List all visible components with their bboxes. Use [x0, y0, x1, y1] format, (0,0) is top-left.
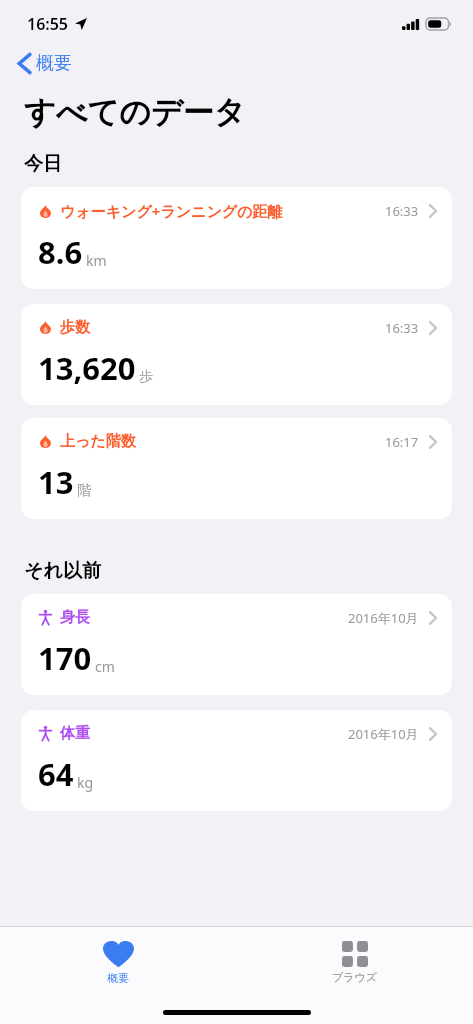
other: ブラウズ [342, 941, 368, 967]
staticText: 上った階数 [60, 432, 136, 451]
staticText: 170 [38, 637, 92, 679]
staticText: 16:33 [385, 319, 419, 337]
button[interactable]: 概要 [0, 939, 236, 987]
staticText: 16:55 [27, 13, 69, 35]
staticText: 歩 [139, 368, 153, 386]
staticText: 16:33 [385, 202, 419, 220]
staticText: 概要 [36, 52, 72, 75]
staticText: 13,620 [38, 347, 136, 389]
staticText: 64 [38, 753, 74, 795]
staticText: 2016年10月 [348, 609, 419, 627]
staticText: 概要 [107, 971, 129, 985]
staticText: ブラウズ [332, 970, 378, 984]
staticText: 13 [38, 461, 74, 503]
staticText: 歩数 [60, 318, 90, 337]
staticText: それ以前 [24, 559, 101, 583]
staticText: cm [95, 657, 115, 676]
staticText: ウォーキング+ランニングの距離 [60, 201, 283, 221]
staticText: 今日 [24, 152, 62, 176]
staticText: 2016年10月 [348, 725, 419, 743]
staticText: kg [77, 773, 94, 792]
other: 概要 [103, 941, 134, 968]
button[interactable]: 体重 [21, 710, 452, 811]
button[interactable]: ウォーキング+ランニングの距離 [21, 187, 452, 289]
button[interactable]: 概要 [14, 48, 76, 79]
button[interactable]: ブラウズ [236, 939, 473, 986]
staticText: 身長 [60, 608, 90, 627]
staticText: 16:17 [385, 433, 419, 451]
staticText: km [86, 251, 107, 270]
staticText: 体重 [60, 724, 90, 743]
button[interactable]: 身長 [21, 594, 452, 695]
button[interactable]: 上った階数 [21, 418, 452, 519]
button[interactable]: 歩数 [21, 304, 452, 405]
staticText: 8.6 [38, 231, 83, 273]
staticText: すべてのデータ [24, 93, 246, 132]
staticText: 階 [77, 482, 91, 500]
